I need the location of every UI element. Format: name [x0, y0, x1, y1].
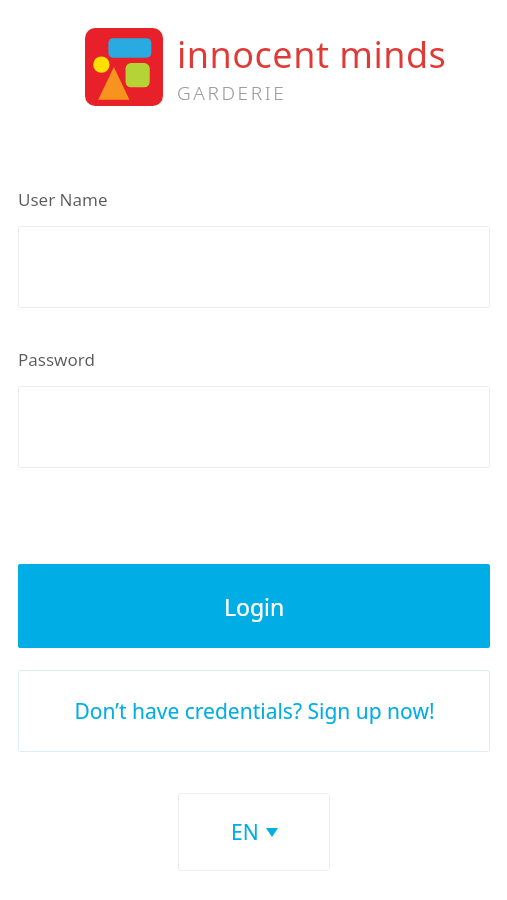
button[interactable]: EN	[178, 793, 330, 871]
button[interactable]: Don’t have credentials? Sign up now!	[18, 670, 490, 752]
other: Change language	[266, 828, 278, 837]
staticText: EN	[231, 818, 259, 847]
staticText: innocent minds	[177, 30, 447, 79]
staticText: User Name	[18, 188, 108, 211]
staticText: Login	[224, 591, 285, 622]
other: Innocent Minds Garderie logo	[85, 28, 163, 106]
staticText: Don’t have credentials? Sign up now!	[74, 697, 435, 726]
staticText: GARDERIE	[177, 80, 287, 106]
button[interactable]: Login	[18, 564, 490, 648]
staticText: Password	[18, 348, 95, 371]
